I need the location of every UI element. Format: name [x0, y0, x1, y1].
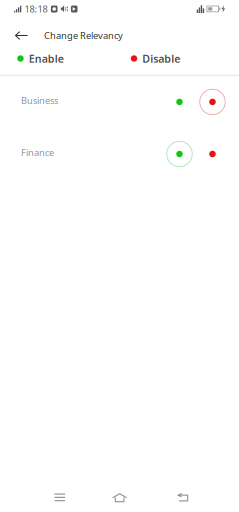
staticText: Business — [21, 94, 58, 107]
button[interactable]: Back — [157, 478, 207, 512]
button[interactable]: Finance — [0, 127, 239, 181]
button[interactable]: Back — [8, 23, 35, 47]
staticText: Finance — [21, 146, 54, 159]
button[interactable]: Business — [0, 77, 239, 127]
staticText: Enable — [29, 51, 64, 66]
button[interactable]: Home — [95, 479, 145, 512]
staticText: Change Relevancy — [44, 29, 123, 42]
staticText: Disable — [142, 51, 180, 66]
button[interactable]: Recent apps — [35, 478, 85, 512]
staticText: 18:18 — [24, 3, 47, 15]
